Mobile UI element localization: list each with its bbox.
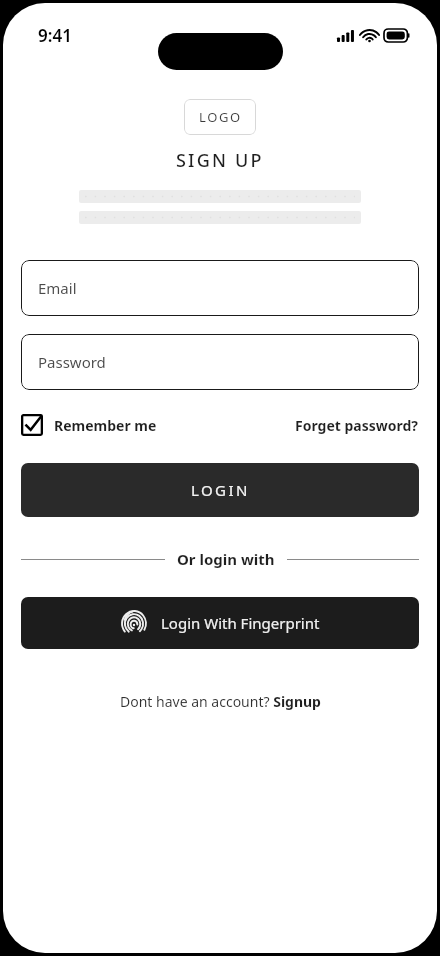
staticText: Remember me [54,416,157,435]
button[interactable]: LOGO [184,99,256,135]
staticText: Dont have an account? Signup [120,692,321,711]
staticText: LOGO [199,108,242,126]
staticText: Or login with [177,549,275,569]
button[interactable]: Dont have an account? Signup [120,692,321,711]
button[interactable]: Email [21,260,419,316]
staticText: LOGIN [191,480,250,500]
staticText: Login With Fingerprint [161,613,320,633]
staticText: Password [38,352,106,372]
staticText: 9:41 [38,24,72,47]
staticText: Email [38,278,77,298]
button[interactable]: Forget password? [295,416,419,435]
button[interactable]: Fingerprint [21,597,419,649]
staticText: Forget password? [295,416,419,435]
button[interactable]: Password [21,334,419,390]
button[interactable]: LOGIN [21,463,419,517]
button[interactable]: Remember me [21,414,157,436]
staticText: SIGN UP [176,148,264,173]
other: Fingerprint [121,610,147,636]
